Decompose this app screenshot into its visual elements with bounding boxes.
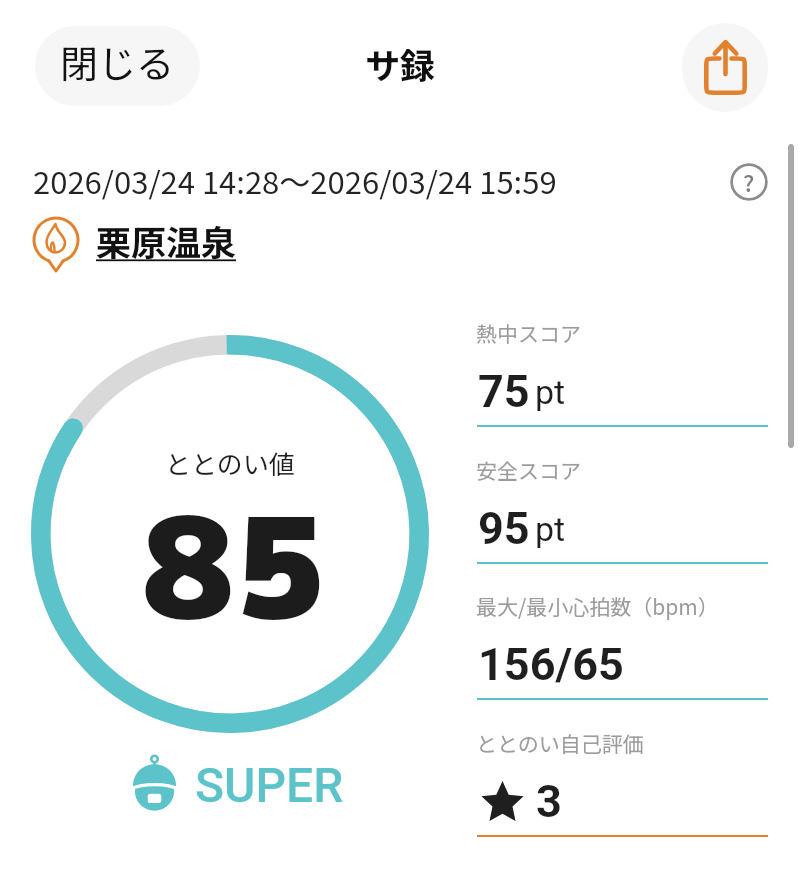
button[interactable]: 安全スコア	[477, 452, 768, 564]
staticText: 2026/03/24 14:28〜2026/03/24 15:59	[33, 158, 557, 203]
staticText: SUPER	[195, 757, 344, 813]
staticText: 熱中スコア	[476, 318, 581, 348]
button[interactable]: 最大/最小心拍数（bpm）	[477, 588, 768, 700]
button[interactable]: 閉じる	[35, 26, 200, 106]
staticText: ?	[743, 165, 755, 198]
staticText: ととのい値	[165, 444, 295, 482]
button[interactable]: 熱中スコア	[477, 315, 768, 427]
staticText: 85	[142, 458, 326, 659]
staticText: 75	[478, 365, 530, 418]
staticText: 3	[536, 775, 562, 828]
staticText: pt	[535, 372, 566, 412]
staticText: 95	[478, 502, 530, 555]
button[interactable]	[30, 212, 82, 276]
staticText: 栗原温泉	[96, 215, 237, 266]
staticText: 安全スコア	[476, 455, 581, 485]
staticText: 最大/最小心拍数（bpm）	[476, 591, 719, 621]
button[interactable]: Help	[730, 163, 768, 201]
button[interactable]: ととのい自己評価	[477, 725, 768, 837]
staticText: 閉じる	[60, 34, 175, 89]
staticText: ととのい自己評価	[476, 728, 644, 758]
staticText: 156/65	[478, 638, 624, 691]
button[interactable]: SUPER	[133, 754, 346, 810]
button[interactable]: Share	[682, 23, 768, 112]
button[interactable]: 栗原温泉	[96, 215, 237, 266]
staticText: サ録	[365, 38, 436, 89]
staticText: pt	[535, 509, 566, 549]
